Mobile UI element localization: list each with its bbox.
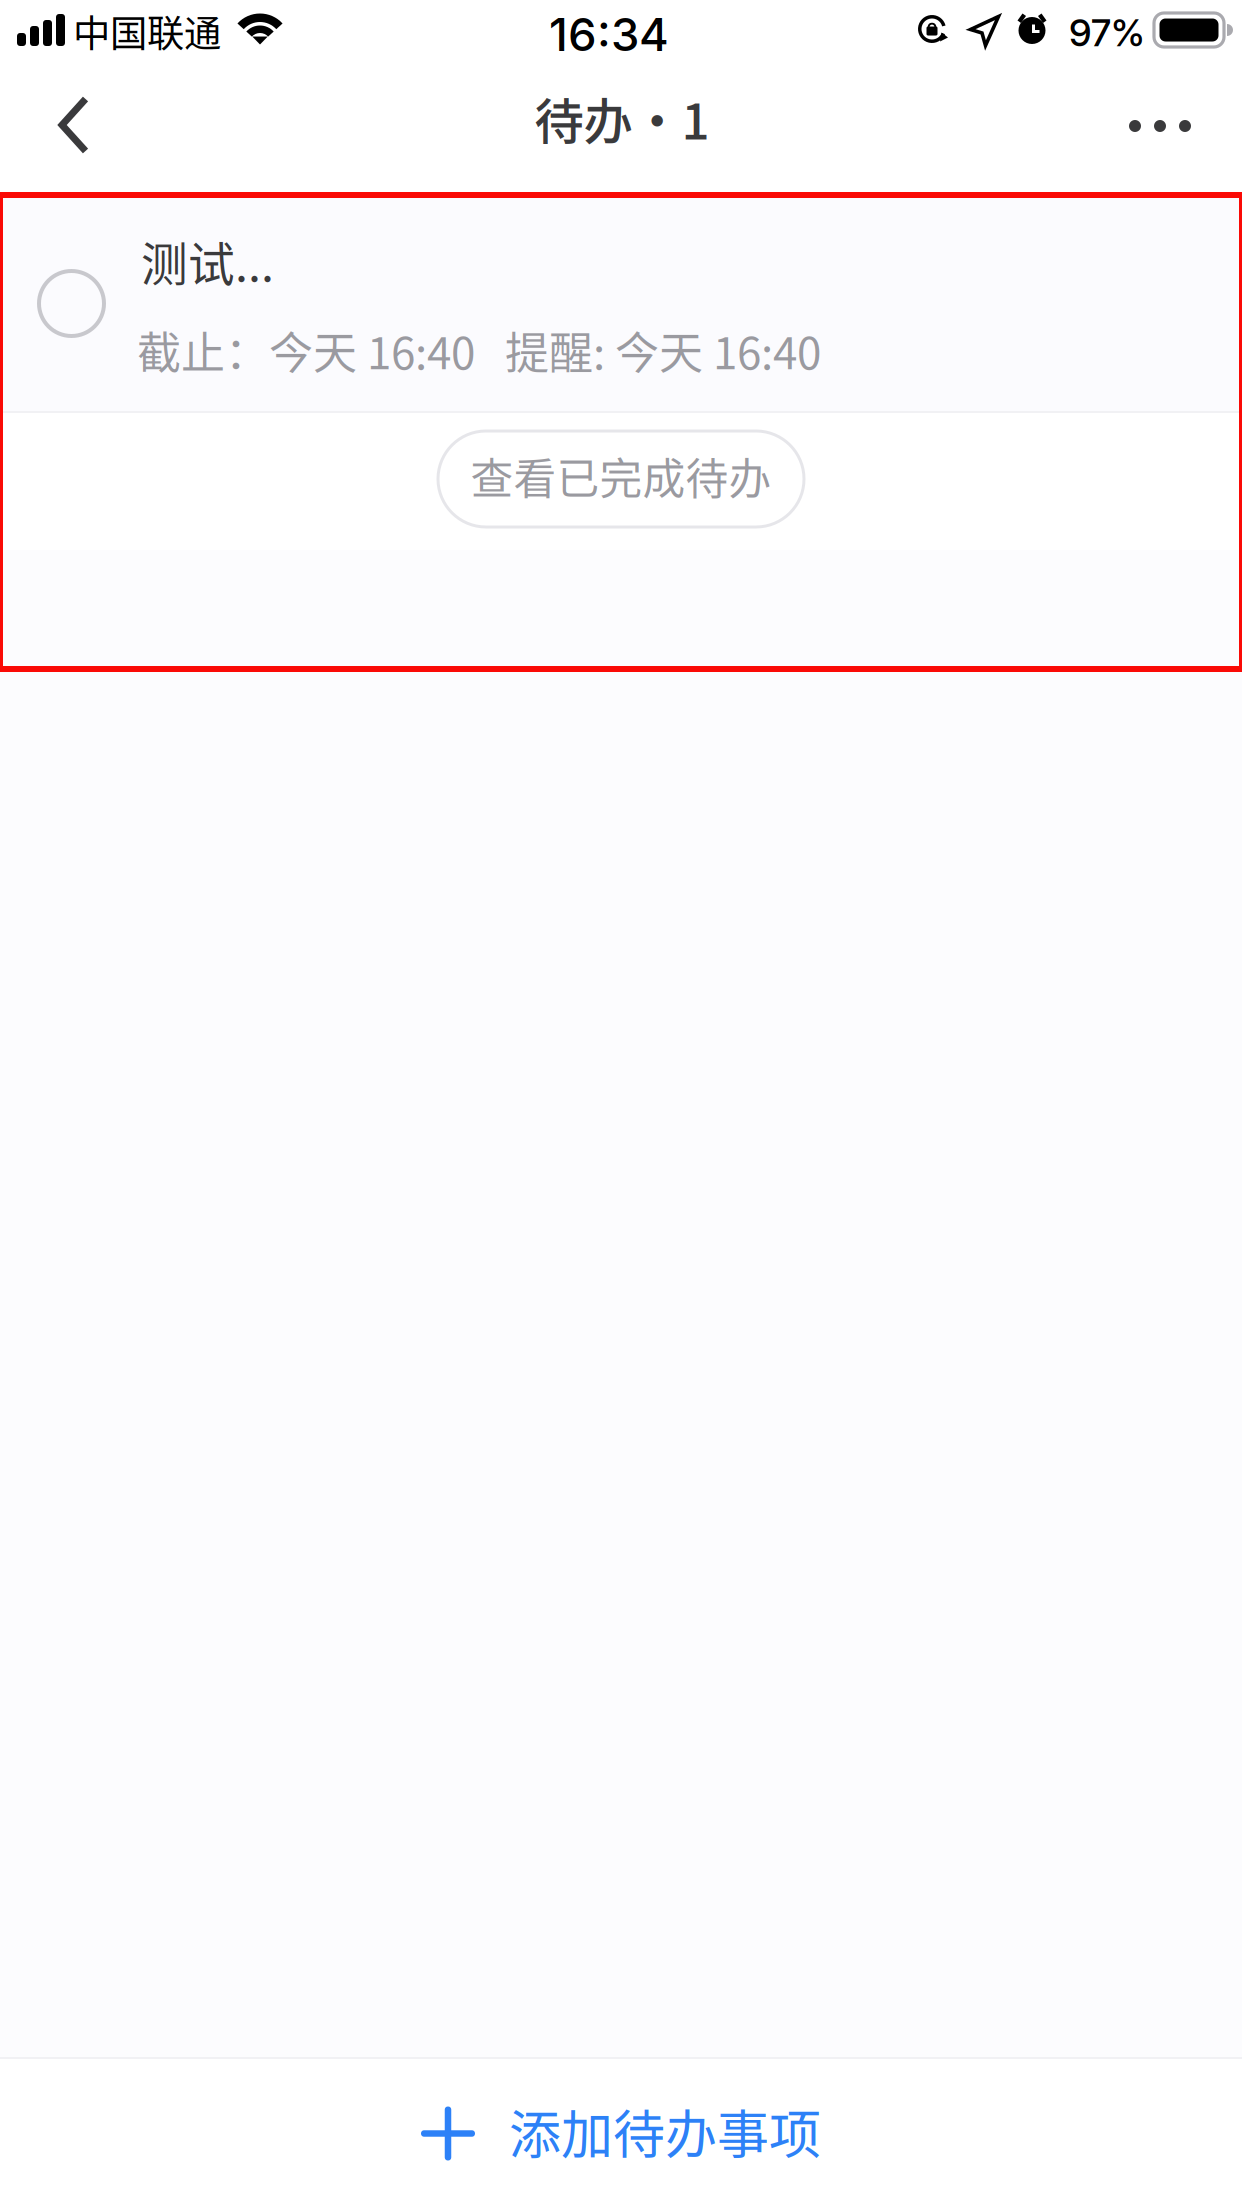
staticText: 16:34 (549, 7, 669, 62)
button[interactable]: 返回 (0, 70, 118, 192)
button[interactable]: 添加待办事项 (0, 2059, 1242, 2208)
button[interactable]: 待办·1 (421, 70, 821, 192)
button[interactable]: 测试... (0, 195, 1242, 411)
staticText: 截止：今天 16:40 提醒: 今天 16:40 (137, 318, 821, 382)
button[interactable]: 更多 (1118, 70, 1242, 192)
staticText: 97% (1069, 10, 1145, 55)
staticText: 测试... (141, 227, 274, 295)
staticText: 查看已完成待办 (470, 445, 771, 507)
staticText: 添加待办事项 (509, 2093, 821, 2169)
staticText: 中国联通 (73, 4, 221, 58)
staticText: 待办·1 (534, 82, 709, 154)
button[interactable]: 查看已完成待办 (438, 431, 804, 527)
